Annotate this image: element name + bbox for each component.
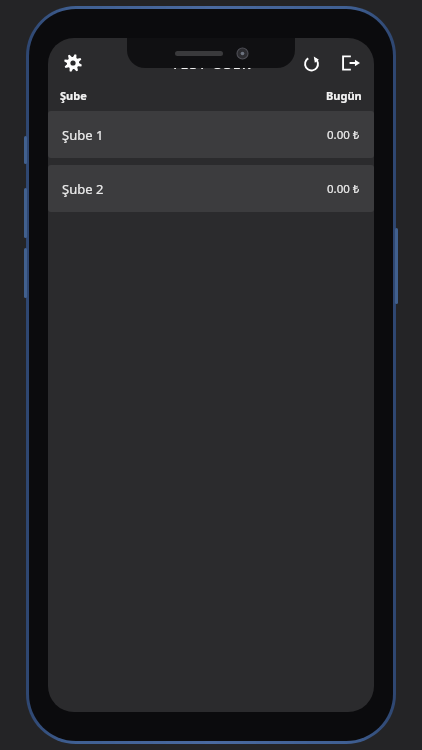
button[interactable]: Şube 1 [48, 111, 374, 158]
staticText: TEST USER [171, 54, 252, 73]
staticText: Şube 2 [62, 180, 104, 198]
staticText: 0.00 ₺ [327, 181, 360, 197]
button[interactable]: Şube 2 [48, 165, 374, 212]
staticText: Bugün [326, 88, 362, 103]
staticText: 0.00 ₺ [327, 127, 360, 143]
button[interactable]: Logout [334, 46, 368, 80]
button[interactable]: Refresh [294, 46, 328, 80]
staticText: Şube [60, 88, 87, 103]
staticText: Şube 1 [62, 126, 104, 144]
button[interactable]: Settings [56, 46, 90, 80]
